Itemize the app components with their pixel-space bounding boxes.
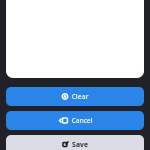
button[interactable]: Save <box>6 135 144 150</box>
staticText: Clear <box>72 92 89 101</box>
button[interactable]: Cancel <box>6 111 144 130</box>
button[interactable]: Clear <box>6 87 144 106</box>
staticText: Cancel <box>71 116 92 125</box>
staticText: Save <box>72 140 88 149</box>
